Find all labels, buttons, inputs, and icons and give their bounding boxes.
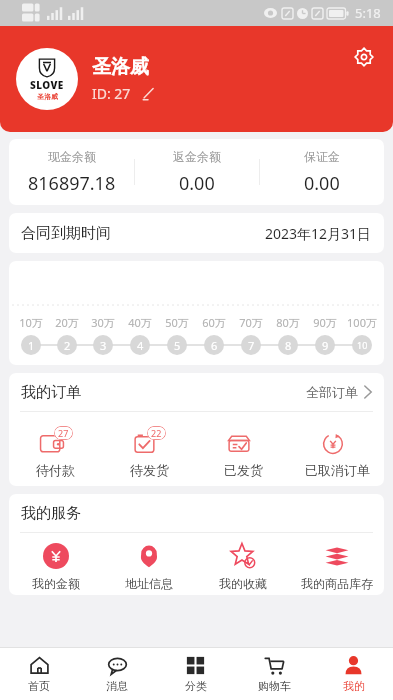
button[interactable]: 消息: [78, 648, 156, 700]
staticText: 3: [100, 338, 107, 353]
staticText: 6: [211, 338, 218, 353]
staticText: 已取消订单: [305, 462, 370, 478]
staticText: 30万: [91, 315, 115, 330]
button[interactable]: Avatar: [16, 48, 78, 110]
staticText: 我的收藏: [219, 576, 267, 591]
staticText: 7: [248, 338, 255, 353]
staticText: 816897.18: [28, 171, 116, 196]
button[interactable]: Settings: [349, 42, 379, 72]
staticText: 现金余额: [48, 149, 96, 164]
staticText: 8: [285, 338, 292, 353]
button[interactable]: 4: [121, 335, 158, 355]
staticText: 90万: [313, 315, 337, 330]
staticText: 保证金: [304, 149, 340, 164]
staticText: 20万: [55, 315, 79, 330]
staticText: 合同到期时间: [21, 224, 111, 243]
button[interactable]: 我的: [314, 648, 393, 700]
staticText: 10: [357, 339, 368, 351]
staticText: 2: [64, 338, 71, 353]
staticText: SLOVE: [30, 78, 64, 92]
button[interactable]: 现金余额: [9, 149, 134, 196]
staticText: 我的金额: [32, 576, 80, 591]
staticText: 我的订单: [21, 383, 81, 402]
button[interactable]: 2: [49, 335, 85, 355]
staticText: 60万: [202, 315, 226, 330]
staticText: 全部订单: [306, 384, 358, 400]
button[interactable]: 9: [306, 335, 343, 355]
button[interactable]: 首页: [0, 648, 78, 700]
button[interactable]: 地址信息: [102, 543, 196, 591]
staticText: 我的商品库存: [301, 576, 373, 591]
button[interactable]: 我的订单: [9, 373, 384, 411]
staticText: 70万: [239, 315, 263, 330]
staticText: 0.00: [179, 171, 215, 196]
staticText: 27: [58, 427, 69, 439]
button[interactable]: 1: [13, 335, 49, 355]
button[interactable]: 已取消订单: [290, 426, 384, 478]
staticText: 消息: [106, 679, 128, 693]
staticText: 已发货: [224, 462, 263, 478]
button[interactable]: 7: [232, 335, 269, 355]
staticText: 购物车: [258, 679, 291, 693]
button[interactable]: 27: [9, 426, 102, 478]
staticText: 1: [28, 338, 35, 353]
staticText: 待付款: [36, 462, 75, 478]
staticText: 100万: [347, 315, 377, 330]
button[interactable]: 我的商品库存: [290, 543, 384, 591]
button[interactable]: Edit nickname: [140, 86, 156, 102]
staticText: 返金余额: [173, 149, 221, 164]
staticText: 地址信息: [125, 576, 173, 591]
staticText: 圣洛威: [92, 55, 149, 79]
button[interactable]: 3: [85, 335, 121, 355]
button[interactable]: 我的金额: [9, 543, 102, 591]
staticText: 我的: [343, 679, 365, 693]
staticText: 22: [151, 427, 162, 439]
button[interactable]: 22: [102, 426, 196, 478]
button[interactable]: 10: [343, 335, 380, 355]
staticText: 5: [174, 338, 181, 353]
staticText: 首页: [28, 679, 50, 693]
staticText: 50万: [165, 315, 189, 330]
staticText: 9: [322, 338, 329, 353]
button[interactable]: 8: [269, 335, 306, 355]
button[interactable]: 已发货: [196, 426, 290, 478]
button[interactable]: 保证金: [260, 149, 384, 196]
staticText: 10万: [19, 315, 43, 330]
button[interactable]: 我的收藏: [196, 543, 290, 591]
staticText: 4: [137, 338, 144, 353]
staticText: 5:18: [355, 4, 381, 22]
button[interactable]: 6: [195, 335, 232, 355]
staticText: 待发货: [130, 462, 169, 478]
button[interactable]: 购物车: [235, 648, 314, 700]
staticText: 我的服务: [21, 504, 81, 523]
staticText: 40万: [128, 315, 152, 330]
staticText: ID: 27: [92, 84, 131, 103]
button[interactable]: 合同到期时间: [9, 213, 384, 253]
staticText: 2023年12月31日: [265, 224, 372, 243]
staticText: 0.00: [304, 171, 340, 196]
button[interactable]: 分类: [156, 648, 235, 700]
staticText: 圣洛威: [37, 92, 58, 101]
button[interactable]: 返金余额: [135, 149, 259, 196]
button[interactable]: 5: [158, 335, 195, 355]
staticText: 分类: [185, 679, 207, 693]
staticText: 80万: [276, 315, 300, 330]
